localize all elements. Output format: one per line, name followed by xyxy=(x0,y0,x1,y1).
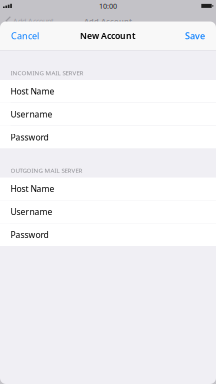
staticText: Host Name xyxy=(10,183,54,194)
button[interactable]: Password xyxy=(0,126,216,148)
staticText: Password xyxy=(10,131,48,143)
staticText: Cancel xyxy=(11,30,39,42)
button[interactable]: Username xyxy=(0,103,216,125)
button[interactable]: Save xyxy=(177,23,216,49)
button[interactable]: Host Name xyxy=(0,177,216,200)
staticText: Add Account xyxy=(13,16,54,26)
staticText: Host Name xyxy=(10,85,54,97)
button[interactable]: Username xyxy=(0,200,216,223)
staticText: OUTGOING MAIL SERVER xyxy=(10,166,82,174)
button[interactable]: Host Name xyxy=(0,80,216,102)
button[interactable]: Cancel xyxy=(0,23,47,49)
staticText: Password xyxy=(10,229,48,240)
staticText: 10:00 xyxy=(99,1,117,11)
staticText: Username xyxy=(10,108,52,120)
staticText: New Account xyxy=(80,30,136,42)
staticText: Save xyxy=(185,30,205,42)
staticText: Username xyxy=(10,206,52,217)
staticText: INCOMING MAIL SERVER xyxy=(10,69,83,77)
button[interactable]: Password xyxy=(0,223,216,246)
staticText: Add Account xyxy=(84,16,132,26)
